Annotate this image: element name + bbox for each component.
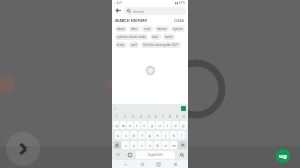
staticText: z [125, 143, 127, 148]
staticText: wall [131, 43, 137, 47]
button[interactable]: Backspace [178, 141, 187, 149]
button[interactable]: s [122, 131, 129, 139]
button[interactable]: Hide keyboard [121, 160, 129, 168]
staticText: e [129, 123, 131, 128]
staticText: temp [117, 43, 125, 47]
button[interactable]: CLEAR [173, 19, 185, 23]
button[interactable]: x [130, 141, 137, 149]
staticText: Search [133, 9, 144, 14]
button[interactable]: mod [142, 26, 153, 32]
button[interactable]: Channel logo [276, 149, 290, 163]
button[interactable]: e [127, 121, 133, 129]
button[interactable]: c [138, 141, 145, 149]
button[interactable]: Back [114, 6, 123, 15]
button[interactable]: audio [163, 34, 175, 40]
button[interactable]: !#1 [113, 151, 123, 159]
button[interactable]: i [164, 121, 171, 129]
button[interactable]: a [115, 131, 121, 139]
button[interactable]: n [162, 141, 169, 149]
staticText: audio [165, 35, 173, 39]
button[interactable]: p [180, 121, 187, 129]
staticText: c [141, 143, 143, 148]
button[interactable]: wall [129, 42, 139, 48]
staticText: 5 [148, 115, 150, 119]
button[interactable]: z [122, 141, 129, 149]
staticText: f [141, 133, 143, 138]
button[interactable]: 4 [137, 113, 145, 120]
button[interactable]: system s demo mode [115, 34, 148, 40]
button[interactable]: 7 [159, 113, 166, 120]
staticText: mod [144, 27, 151, 31]
staticText: q [115, 123, 118, 128]
staticText: 0 [183, 115, 185, 119]
staticText: 9 [176, 115, 178, 119]
staticText: Onln for exam guide 2021 [143, 43, 179, 47]
staticText: English (US) [148, 153, 163, 157]
staticText: k [173, 133, 175, 138]
button[interactable]: k [170, 131, 177, 139]
button[interactable]: Shift [113, 141, 121, 149]
button[interactable]: Search [176, 151, 187, 159]
button[interactable]: system [171, 26, 185, 32]
button[interactable]: dem [129, 26, 140, 32]
staticText: a [117, 133, 119, 138]
button[interactable]: b [154, 141, 161, 149]
staticText: ug [279, 152, 287, 160]
staticText: l [181, 133, 182, 138]
staticText: dool [152, 35, 159, 39]
staticText: 1 [116, 115, 118, 119]
button[interactable]: u [156, 121, 163, 129]
button[interactable]: 0 [180, 113, 187, 120]
staticText: y [151, 123, 153, 128]
staticText: demon [157, 27, 167, 31]
staticText: system [173, 27, 183, 31]
staticText: 7 [162, 115, 164, 119]
button[interactable]: 1 [113, 113, 121, 120]
staticText: 2 [124, 115, 126, 119]
staticText: t [143, 123, 145, 128]
button[interactable]: l [178, 131, 185, 139]
button[interactable]: f [138, 131, 145, 139]
button[interactable]: r [134, 121, 140, 129]
button[interactable]: 5 [145, 113, 152, 120]
button[interactable]: English (US) [136, 151, 175, 159]
staticText: n [164, 143, 167, 148]
button[interactable]: demo [115, 26, 127, 32]
button[interactable]: Keyboard settings [181, 106, 186, 111]
button[interactable]: w [120, 121, 126, 129]
button[interactable]: Menu [171, 160, 179, 168]
staticText: demo [117, 27, 125, 31]
button[interactable]: Recents [154, 160, 162, 168]
button[interactable]: 2 [121, 113, 129, 120]
button[interactable]: d [130, 131, 137, 139]
button[interactable]: q [113, 121, 119, 129]
button[interactable]: 3 [129, 113, 137, 120]
button[interactable]: v [146, 141, 153, 149]
button[interactable]: Home [138, 160, 146, 168]
button[interactable]: Emoji [124, 151, 135, 159]
staticText: m [172, 143, 176, 148]
staticText: > [114, 106, 117, 111]
button[interactable]: j [162, 131, 169, 139]
button[interactable]: dool [150, 34, 161, 40]
staticText: w [122, 123, 125, 128]
button[interactable]: temp [115, 42, 127, 48]
staticText: ⌁ 4:21 [114, 1, 123, 5]
button[interactable]: y [148, 121, 155, 129]
staticText: i [167, 123, 168, 128]
button[interactable]: 6 [152, 113, 159, 120]
button[interactable]: m [170, 141, 177, 149]
staticText: 8 [169, 115, 171, 119]
button[interactable]: h [154, 131, 161, 139]
button[interactable]: Onln for exam guide 2021 [141, 42, 181, 48]
button[interactable]: demon [155, 26, 169, 32]
button[interactable]: Search [124, 7, 186, 15]
button[interactable]: 8 [166, 113, 173, 120]
button[interactable]: Next video [6, 132, 40, 166]
button[interactable]: t [141, 121, 147, 129]
button[interactable]: g [146, 131, 153, 139]
staticText: 3 [132, 115, 134, 119]
button[interactable]: 9 [173, 113, 180, 120]
staticText: r [136, 123, 138, 128]
button[interactable]: o [172, 121, 179, 129]
